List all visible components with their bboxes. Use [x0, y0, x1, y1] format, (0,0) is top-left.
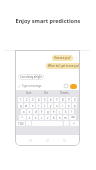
button[interactable]: h [51, 109, 56, 114]
button[interactable]: Recents [63, 139, 66, 142]
staticText: d [35, 110, 37, 114]
staticText: 7 [56, 98, 58, 102]
staticText: 1 [20, 98, 22, 102]
button[interactable]: When do I get to see you? [48, 64, 80, 68]
staticText: I am doing alright [20, 75, 42, 79]
staticText: 8 [62, 98, 64, 102]
button[interactable]: x [33, 115, 38, 120]
button[interactable]: 7 [54, 97, 59, 102]
staticText: y [50, 104, 52, 108]
button[interactable]: 8 [60, 97, 65, 102]
button[interactable]: i [60, 103, 65, 108]
staticText: 3 [32, 98, 34, 102]
staticText: Sure [26, 91, 32, 95]
button[interactable]: w [24, 103, 29, 108]
button[interactable]: k [63, 109, 68, 114]
staticText: s [29, 110, 31, 114]
button[interactable]: r [36, 103, 41, 108]
staticText: . [66, 122, 67, 126]
button[interactable]: y [48, 103, 53, 108]
button[interactable]: e [30, 103, 35, 108]
staticText: ?123 [18, 122, 24, 126]
staticText: 5 [44, 98, 46, 102]
button[interactable]: m [63, 115, 68, 120]
staticText: ⌫ [71, 116, 75, 119]
staticText: 2 [26, 98, 28, 102]
button[interactable]: ⇧ [19, 115, 26, 120]
staticText: 9 [68, 98, 70, 102]
staticText: o [68, 104, 70, 108]
button[interactable]: j [57, 109, 62, 114]
button[interactable]: u [54, 103, 59, 108]
button[interactable]: ↵ [70, 121, 79, 126]
staticText: Type a message [22, 84, 42, 88]
button[interactable]: n [57, 115, 62, 120]
staticText: h [53, 110, 55, 114]
staticText: , [28, 122, 29, 126]
button[interactable]: z [27, 115, 32, 120]
button[interactable]: v [45, 115, 50, 120]
button[interactable]: l [69, 109, 74, 114]
button[interactable]: p [72, 103, 77, 108]
button[interactable]: Sure [26, 91, 32, 95]
staticText: 0 [74, 98, 76, 102]
button[interactable]: 5 [42, 97, 47, 102]
staticText: l [71, 110, 72, 114]
staticText: How are you? [54, 56, 71, 60]
button[interactable]: 2 [24, 97, 29, 102]
staticText: When do I get to see you? [48, 64, 80, 68]
staticText: v [47, 116, 49, 120]
staticText: Yes [44, 91, 49, 95]
staticText: ↵ [73, 122, 76, 125]
button[interactable]: 1 [18, 97, 23, 102]
button[interactable]: Yes [44, 91, 49, 95]
staticText: f [41, 110, 42, 114]
button[interactable]: q [18, 103, 23, 108]
button[interactable]: . [64, 121, 69, 126]
button[interactable]: 6 [48, 97, 53, 102]
other: Emoji [64, 84, 68, 88]
button[interactable]: ?123 [16, 121, 25, 126]
button[interactable]: o [66, 103, 71, 108]
button[interactable]: Send [70, 84, 77, 89]
button[interactable]: t [42, 103, 47, 108]
staticText: b [53, 116, 55, 120]
button[interactable]: d [33, 109, 38, 114]
staticText: k [65, 110, 67, 114]
button[interactable]: I am doing alright [20, 75, 42, 79]
staticText: p [74, 104, 76, 108]
staticText: u [56, 104, 58, 108]
staticText: 4 [38, 98, 40, 102]
staticText: e [32, 104, 34, 108]
staticText: i [62, 104, 63, 108]
staticText: t [44, 104, 45, 108]
button[interactable]: How are you? [52, 55, 77, 61]
staticText: Enjoy smart predictions [0, 17, 96, 24]
button[interactable]: 4 [36, 97, 41, 102]
button[interactable]: Home [46, 139, 49, 142]
button[interactable]: g [45, 109, 50, 114]
staticText: ⇧ [21, 116, 24, 119]
button[interactable]: f [39, 109, 44, 114]
button[interactable]: c [39, 115, 44, 120]
button[interactable]: ⌫ [69, 115, 76, 120]
button[interactable]: 0 [72, 97, 77, 102]
button[interactable]: 3 [30, 97, 35, 102]
button[interactable]: , [26, 121, 31, 126]
button[interactable]: b [51, 115, 56, 120]
other: Attach [18, 85, 21, 88]
button[interactable]: Back [29, 139, 32, 142]
staticText: n [59, 116, 61, 120]
staticText: q [20, 104, 22, 108]
staticText: a [23, 110, 25, 114]
button[interactable]: Thanks [60, 91, 69, 95]
staticText: m [64, 116, 67, 120]
button[interactable]: s [27, 109, 32, 114]
staticText: w [25, 104, 28, 108]
staticText: z [29, 116, 31, 120]
button[interactable]: a [21, 109, 26, 114]
button[interactable]: 9 [66, 97, 71, 102]
staticText: j [59, 110, 60, 114]
staticText: g [47, 110, 49, 114]
